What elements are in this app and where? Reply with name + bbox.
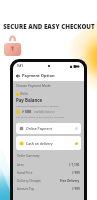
staticText: SECURE AND EASY CHECKOUT (3, 22, 95, 30)
button[interactable]: Back (15, 73, 21, 79)
staticText: Payment Option (22, 73, 55, 78)
staticText: Free Delivery (60, 179, 80, 183)
staticText: ₹ 1,130 (69, 163, 80, 167)
staticText: Top up the wallet to pay instantly next … (16, 115, 65, 118)
staticText: Wallet (20, 92, 29, 96)
staticText: Hand Price (17, 171, 33, 175)
staticText: Amount Pay (17, 187, 35, 191)
staticText: Use wallet balance for faster checkout (16, 104, 59, 107)
staticText: 9:41 (17, 64, 23, 68)
staticText: Choose Payment Mode (16, 84, 51, 88)
staticText: Item (17, 163, 24, 167)
staticText: ₹ 999 (72, 171, 80, 175)
staticText: available balance (34, 110, 55, 114)
button[interactable]: Online Payment (16, 123, 81, 134)
staticText: ₹ 500 (22, 109, 32, 114)
staticText: Delivery Charges (17, 179, 41, 183)
staticText: Order Summary (17, 154, 40, 158)
button[interactable]: Cash on delivery (16, 136, 81, 150)
staticText: ₹ 999 (72, 187, 80, 191)
staticText: Cash on delivery (26, 141, 53, 146)
staticText: Pay Balance (16, 97, 43, 103)
staticText: Online Payment (26, 126, 52, 131)
